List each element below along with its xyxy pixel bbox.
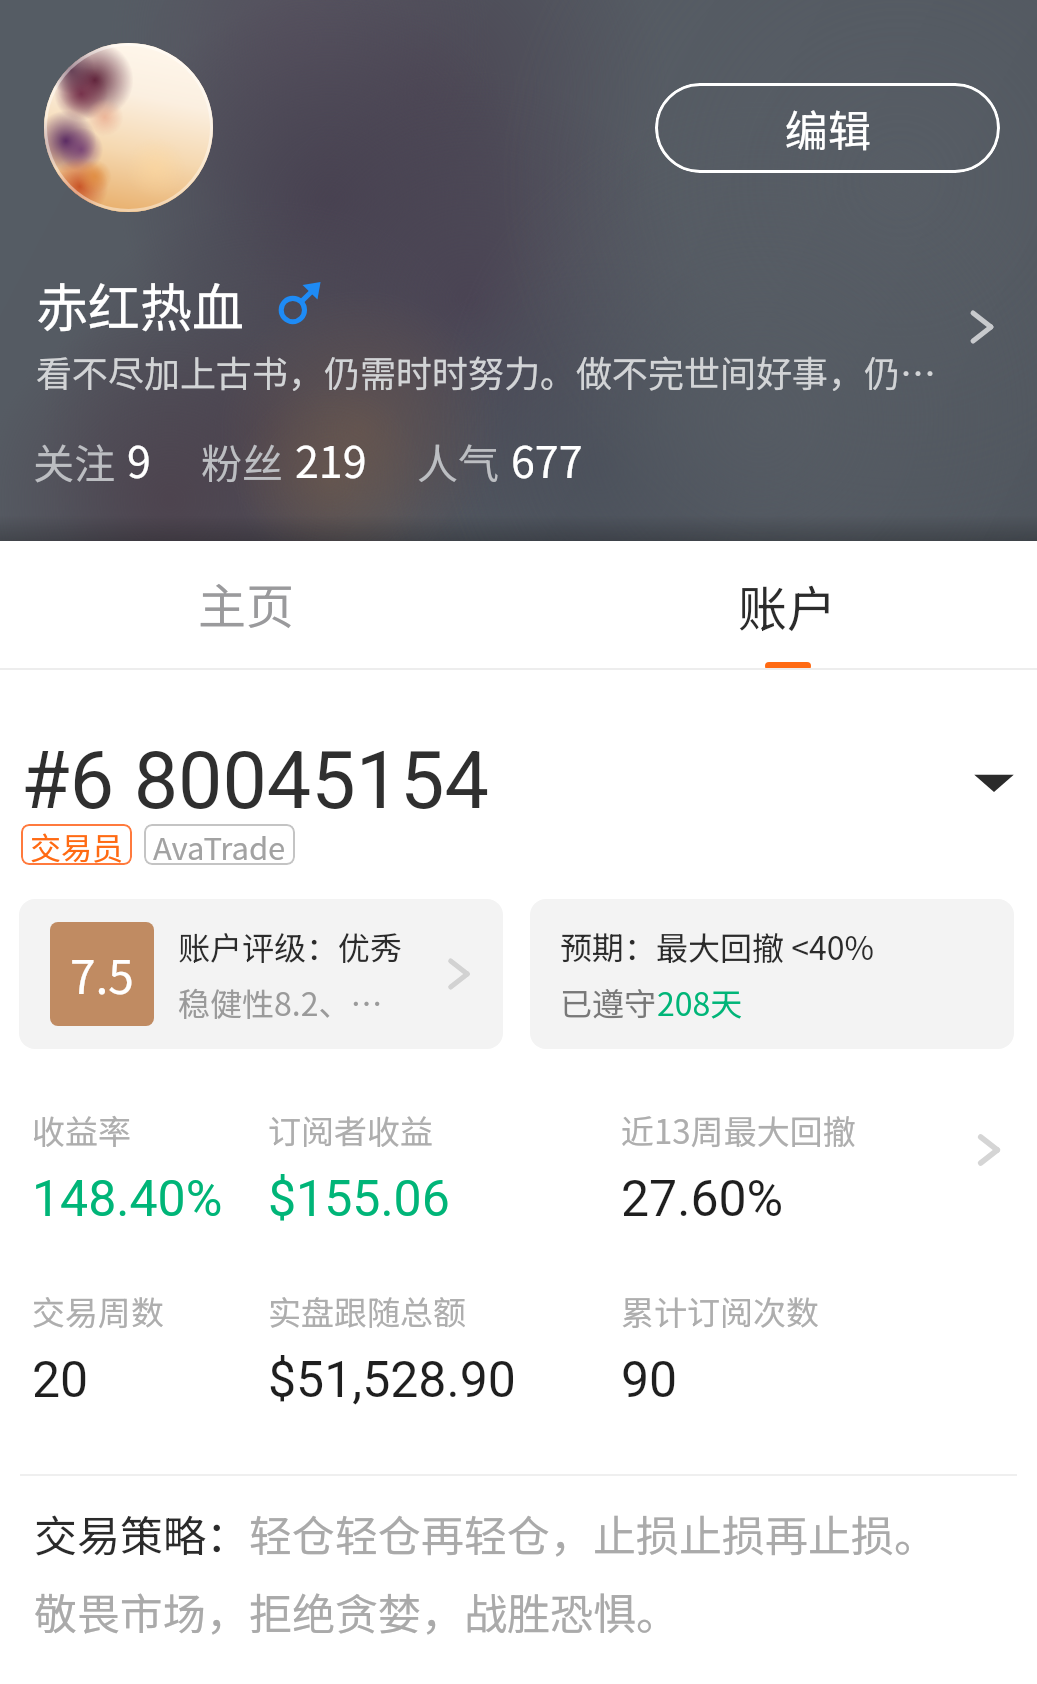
staticText: $155.06 xyxy=(268,1170,450,1229)
button[interactable]: 预期：最大回撤 <40% xyxy=(530,899,1014,1049)
staticText: 7.5 xyxy=(70,941,134,1008)
staticText: $51,528.90 xyxy=(268,1351,516,1410)
staticText: 粉丝 xyxy=(201,431,283,490)
button[interactable]: 7.5 xyxy=(19,899,503,1049)
staticText: 近13周最大回撤 xyxy=(621,1106,856,1154)
staticText: 订阅者收益 xyxy=(268,1106,433,1154)
staticText: 交易员 xyxy=(30,824,123,865)
staticText: 编辑 xyxy=(785,97,871,159)
staticText: 预期：最大回撤 <40% xyxy=(560,923,874,969)
staticText: 人气 xyxy=(417,431,499,490)
button[interactable]: 收益率 xyxy=(0,1106,1037,1229)
staticText: 已遵守 xyxy=(560,979,657,1025)
staticText: 交易策略： xyxy=(34,1502,249,1564)
staticText: 27.60% xyxy=(621,1170,784,1229)
staticText: 累计订阅次数 xyxy=(621,1287,819,1335)
staticText: 账户评级：优秀 xyxy=(178,923,403,969)
button[interactable]: #6 80045154 xyxy=(0,735,1037,828)
staticText: 9 xyxy=(127,428,151,490)
staticText: 轻仓轻仓再轻仓，止损止损再止损。 xyxy=(249,1502,937,1564)
staticText: 219 xyxy=(295,428,367,490)
button[interactable]: Open profile details xyxy=(950,295,1014,359)
staticText: 实盘跟随总额 xyxy=(268,1287,466,1335)
staticText: 看不尽加上古书，仍需时时努力。做不完世间好事，仍… xyxy=(36,345,937,397)
button[interactable]: 编辑 xyxy=(655,83,1000,173)
staticText: 90 xyxy=(621,1351,678,1410)
staticText: 关注 xyxy=(33,431,115,490)
staticText: AvaTrade xyxy=(153,824,286,865)
staticText: 账户 xyxy=(738,570,837,641)
staticText: 交易周数 xyxy=(32,1287,164,1335)
button[interactable]: Avatar xyxy=(44,43,213,212)
staticText: #6 80045154 xyxy=(21,735,489,828)
staticText: 主页 xyxy=(198,568,295,638)
staticText: 148.40% xyxy=(32,1170,223,1229)
staticText: 敬畏市场，拒绝贪婪，战胜恐惧。 xyxy=(34,1580,679,1642)
staticText: 赤红热血 xyxy=(36,267,245,342)
staticText: 677 xyxy=(511,428,583,490)
staticText: 稳健性8.2、… xyxy=(178,979,383,1025)
button[interactable]: 账户 xyxy=(518,541,1037,670)
staticText: 收益率 xyxy=(32,1106,131,1154)
button[interactable]: 主页 xyxy=(0,541,518,670)
staticText: 208天 xyxy=(657,979,743,1025)
other: Switch account xyxy=(973,761,1015,803)
staticText: 20 xyxy=(32,1351,89,1410)
